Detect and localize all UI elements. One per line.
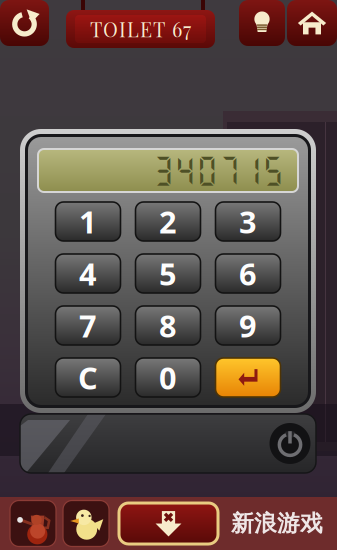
staticText: 1 bbox=[79, 201, 97, 242]
button[interactable]: TOILET 67 bbox=[66, 10, 215, 48]
button[interactable]: C bbox=[55, 358, 120, 397]
button[interactable]: Home bbox=[287, 0, 337, 46]
button[interactable]: 9 bbox=[215, 306, 280, 345]
staticText: 9 bbox=[239, 305, 257, 346]
button[interactable]: Rubber duck bbox=[63, 500, 109, 546]
button[interactable]: 8 bbox=[135, 306, 200, 345]
button[interactable]: 0 bbox=[135, 358, 200, 397]
staticText: TOILET 67 bbox=[90, 16, 191, 42]
button[interactable]: 5 bbox=[135, 254, 200, 293]
staticText: 8 bbox=[159, 305, 177, 346]
button[interactable]: Watering can bbox=[10, 500, 56, 546]
button[interactable]: Hint bbox=[239, 0, 285, 46]
button[interactable]: Close inventory bbox=[117, 501, 219, 545]
staticText: 新浪游戏 bbox=[231, 510, 323, 537]
button[interactable]: 3 bbox=[215, 202, 280, 241]
button[interactable]: 7 bbox=[55, 306, 120, 345]
button[interactable]: 1 bbox=[55, 202, 120, 241]
button[interactable]: Enter bbox=[215, 358, 280, 397]
staticText: 2 bbox=[159, 201, 177, 242]
button[interactable]: Power bbox=[264, 414, 316, 473]
button[interactable]: Restart bbox=[0, 0, 49, 46]
staticText: C bbox=[78, 357, 98, 398]
staticText: 5 bbox=[159, 253, 177, 294]
staticText: 7 bbox=[79, 305, 97, 346]
staticText: 3 bbox=[239, 201, 257, 242]
staticText: 340715 bbox=[152, 152, 284, 188]
staticText: 4 bbox=[79, 253, 97, 294]
staticText: 0 bbox=[159, 357, 177, 398]
button[interactable]: 4 bbox=[55, 254, 120, 293]
button[interactable]: 6 bbox=[215, 254, 280, 293]
staticText: 6 bbox=[239, 253, 257, 294]
button[interactable]: 2 bbox=[135, 202, 200, 241]
